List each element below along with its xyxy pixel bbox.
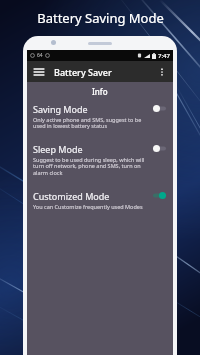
staticText: Info (92, 86, 108, 97)
staticText: Only active phone and SMS, suggest to be… (33, 116, 142, 130)
staticText: You can Customize frequently used Modes (33, 203, 143, 210)
button[interactable]: Saving Mode (27, 100, 173, 133)
staticText: Saving Mode (33, 103, 88, 115)
staticText: Battery Saver (54, 66, 112, 78)
button[interactable]: Saving Mode, off (153, 105, 166, 112)
staticText: Customized Mode (33, 190, 110, 202)
button[interactable]: Customized Mode, on (153, 192, 166, 199)
staticText: 64 (37, 52, 43, 59)
button[interactable]: Sleep Mode (27, 140, 173, 180)
staticText: Battery Saving Mode (37, 9, 164, 27)
staticText: Sleep Mode (33, 143, 83, 155)
button[interactable]: Open navigation menu (31, 64, 46, 79)
staticText: Suggest to be used during sleep, which w… (33, 156, 145, 177)
button[interactable]: Customized Mode (27, 187, 173, 213)
button[interactable]: Sleep Mode, off (153, 145, 166, 152)
button[interactable]: More options (154, 64, 169, 79)
staticText: 7:47 (158, 52, 170, 60)
